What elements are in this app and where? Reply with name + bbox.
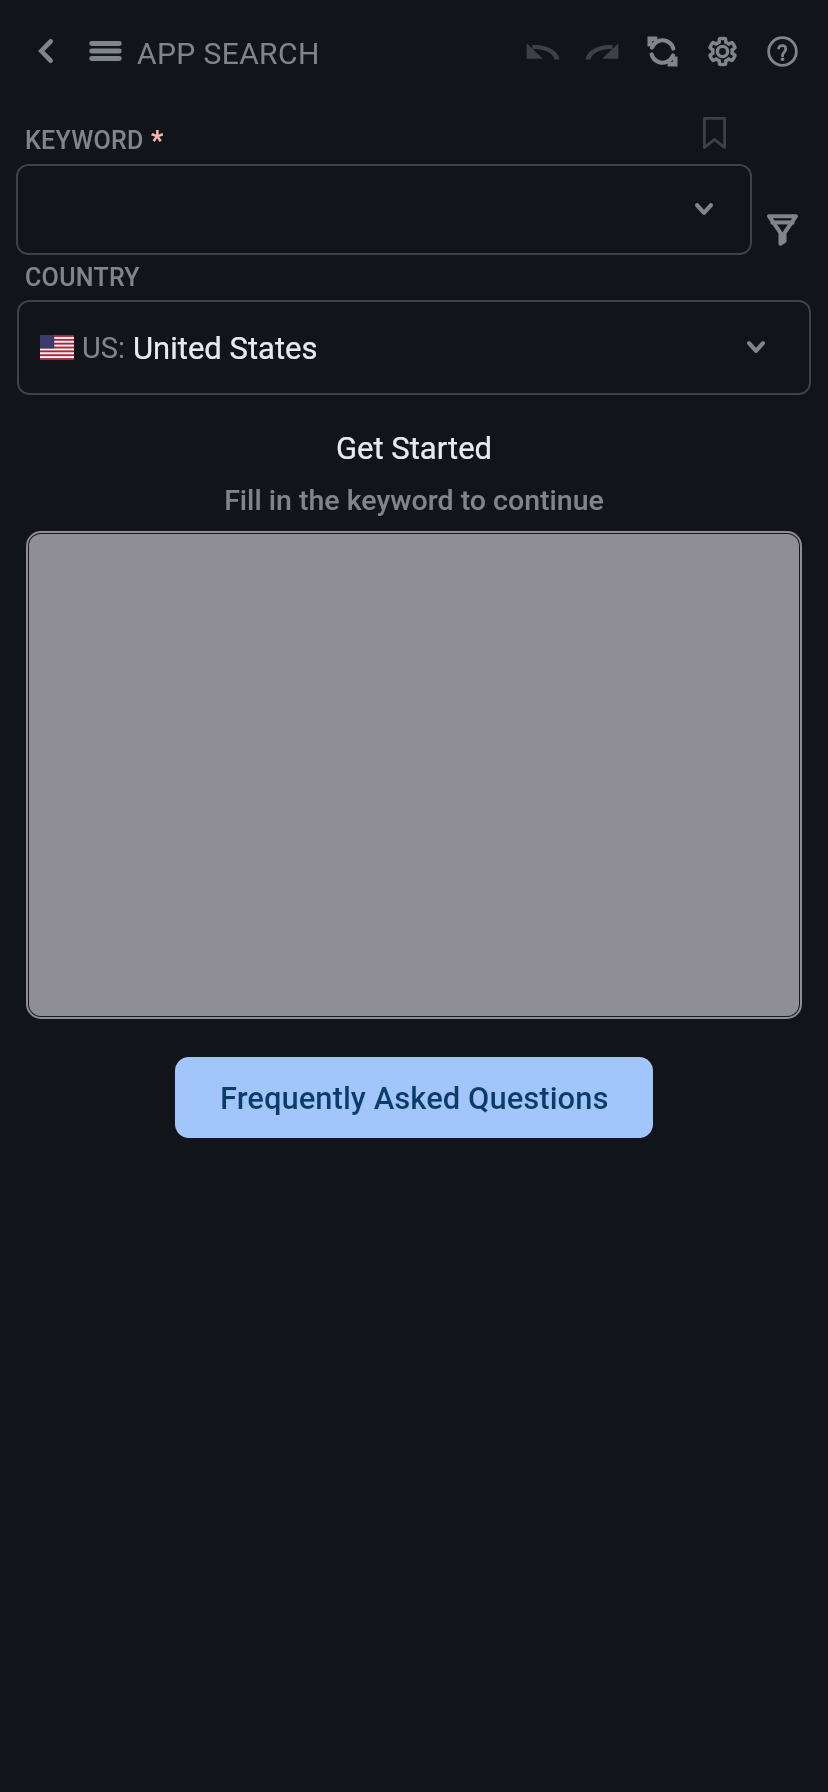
button[interactable]: Settings <box>698 27 746 75</box>
button[interactable]: Refresh <box>638 27 686 75</box>
staticText: Frequently Asked Questions <box>220 1080 609 1116</box>
button[interactable]: Filter <box>757 204 807 254</box>
staticText: KEYWORD <box>25 126 144 155</box>
button[interactable]: Redo <box>579 27 627 75</box>
button[interactable]: Help <box>758 27 806 75</box>
button[interactable]: US: <box>17 300 811 395</box>
button[interactable] <box>16 164 752 255</box>
staticText: United States <box>133 330 318 366</box>
button[interactable]: Menu <box>81 27 129 75</box>
button[interactable]: Bookmark <box>690 109 738 157</box>
button[interactable]: Undo <box>518 27 566 75</box>
staticText: US: <box>82 331 126 365</box>
staticText: COUNTRY <box>25 263 140 292</box>
button[interactable]: Back <box>22 27 70 75</box>
button[interactable]: Frequently Asked Questions <box>175 1057 653 1138</box>
staticText: * <box>151 124 164 157</box>
staticText: Fill in the keyword to continue <box>0 484 828 517</box>
staticText: APP SEARCH <box>137 36 320 71</box>
staticText: Get Started <box>0 430 828 466</box>
